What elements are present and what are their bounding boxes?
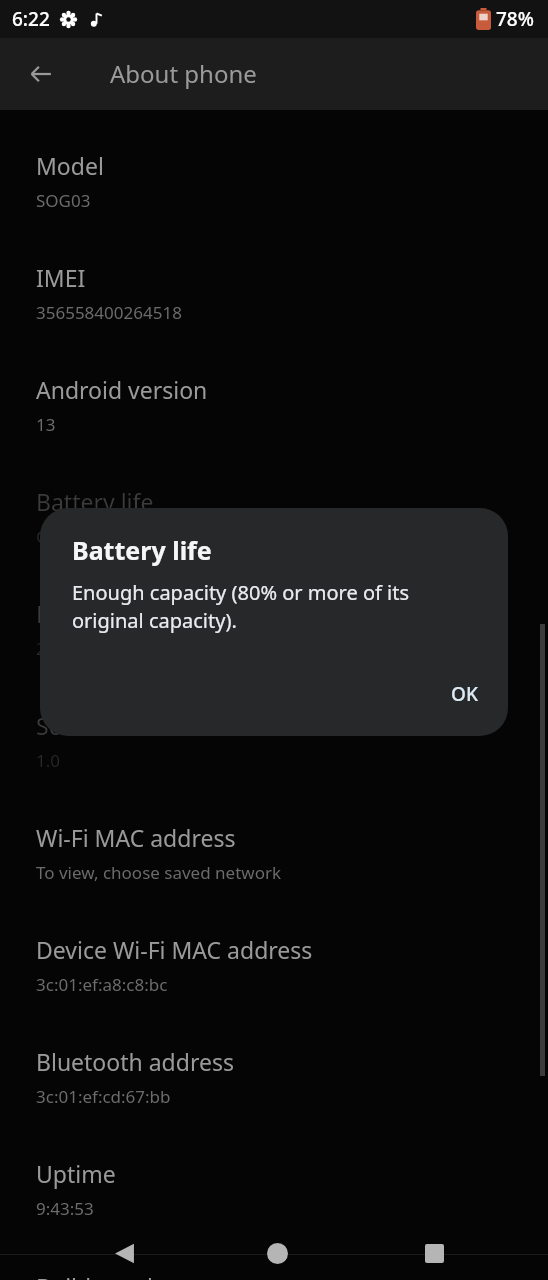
button[interactable]: Model: [0, 134, 548, 246]
staticText: OK: [451, 681, 478, 707]
staticText: Battery life: [72, 533, 212, 567]
staticText: Enough capacity (80% or more of its orig…: [72, 579, 482, 634]
button[interactable]: Device Wi-Fi MAC address: [0, 918, 548, 1030]
staticText: Good: [36, 525, 80, 548]
staticText: Model: [36, 150, 104, 181]
staticText: To view, choose saved network: [36, 861, 282, 884]
staticText: Hardware version: [36, 598, 228, 629]
staticText: Build number: [36, 1271, 184, 1280]
staticText: About phone: [110, 57, 257, 90]
button[interactable]: Android version: [0, 358, 548, 470]
staticText: 356558400264518: [36, 301, 182, 324]
staticText: Bluetooth address: [36, 1046, 234, 1077]
staticText: 9:43:53: [36, 1197, 94, 1220]
staticText: 2.0: [36, 637, 61, 660]
staticText: Device Wi-Fi MAC address: [36, 934, 313, 965]
staticText: 3c:01:ef:cd:67:bb: [36, 1085, 171, 1108]
staticText: 6:22: [12, 6, 50, 32]
staticText: Software version: [36, 710, 217, 741]
button[interactable]: Recents: [414, 1233, 454, 1273]
staticText: Android version: [36, 374, 208, 405]
button[interactable]: Bluetooth address: [0, 1030, 548, 1142]
button[interactable]: Uptime: [0, 1142, 548, 1254]
staticText: 1.0: [36, 749, 61, 772]
button[interactable]: Hardware version: [0, 582, 548, 694]
staticText: 13: [36, 413, 56, 436]
button[interactable]: IMEI: [0, 246, 548, 358]
button[interactable]: OK: [434, 670, 494, 718]
button[interactable]: Back: [18, 51, 64, 97]
staticText: Battery life: [36, 486, 154, 517]
button[interactable]: Back: [104, 1233, 144, 1273]
staticText: IMEI: [36, 262, 86, 293]
staticText: 3c:01:ef:a8:c8:bc: [36, 973, 168, 996]
button[interactable]: Software version: [0, 694, 548, 806]
staticText: Wi-Fi MAC address: [36, 822, 236, 853]
staticText: 78%: [496, 6, 534, 32]
button[interactable]: Build number: [0, 1255, 548, 1280]
staticText: SOG03: [36, 189, 91, 212]
staticText: Uptime: [36, 1158, 116, 1189]
button[interactable]: Home: [257, 1233, 297, 1273]
button[interactable]: Battery life: [0, 470, 548, 582]
button[interactable]: Wi-Fi MAC address: [0, 806, 548, 918]
